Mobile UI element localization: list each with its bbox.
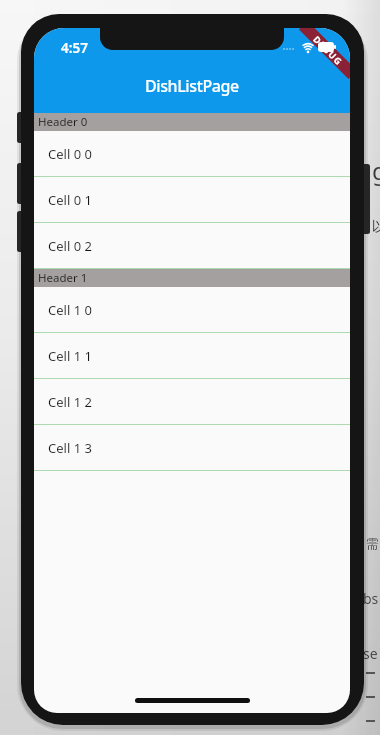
staticText: Cell 0 1: [48, 191, 92, 209]
staticText: Cell 1 2: [48, 393, 92, 411]
button[interactable]: Cell 1 2: [34, 379, 350, 425]
button[interactable]: Cell 0 1: [34, 177, 350, 223]
staticText: Cell 0 2: [48, 237, 92, 255]
staticText: 以: [372, 218, 380, 236]
button[interactable]: Cell 1 1: [34, 333, 350, 379]
staticText: Cell 0 0: [48, 145, 92, 163]
staticText: Cell 1 3: [48, 439, 92, 457]
staticText: 需: [366, 535, 379, 551]
staticText: Header 1: [38, 270, 88, 286]
staticText: bs: [363, 589, 379, 608]
staticText: Cell 1 0: [48, 301, 92, 319]
staticText: Header 0: [38, 114, 88, 130]
button[interactable]: Cell 0 0: [34, 131, 350, 177]
button[interactable]: Cell 0 2: [34, 223, 350, 269]
staticText: DishListPage: [145, 75, 239, 97]
staticText: se: [363, 644, 378, 663]
staticText: DEBUG: [311, 33, 346, 68]
staticText: 4:57: [61, 39, 88, 55]
staticText: g: [372, 154, 380, 187]
button[interactable]: Cell 1 3: [34, 425, 350, 471]
staticText: Cell 1 1: [48, 347, 92, 365]
button[interactable]: Cell 1 0: [34, 287, 350, 333]
